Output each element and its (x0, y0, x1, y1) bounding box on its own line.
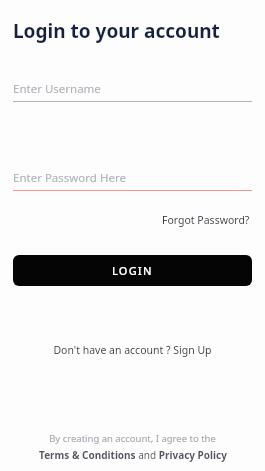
button[interactable]: Enter Username (13, 81, 252, 102)
button[interactable]: Forgot Password? (160, 211, 252, 229)
staticText: Terms & Conditions and Privacy Policy (39, 448, 227, 462)
staticText: Forgot Password? (162, 213, 250, 227)
staticText: Enter Username (13, 81, 101, 97)
staticText: Don't have an account ? Sign Up (53, 343, 212, 357)
staticText: By creating an account, I agree to the (13, 432, 252, 445)
button[interactable]: Terms & Conditions and Privacy Policy (13, 448, 252, 462)
button[interactable]: Enter Password Here (13, 170, 252, 191)
staticText: Login to your account (13, 18, 220, 44)
staticText: Enter Password Here (13, 170, 126, 186)
staticText: LOGIN (112, 263, 153, 278)
button[interactable]: Don't have an account ? Sign Up (49, 340, 216, 360)
button[interactable]: LOGIN (13, 255, 252, 286)
